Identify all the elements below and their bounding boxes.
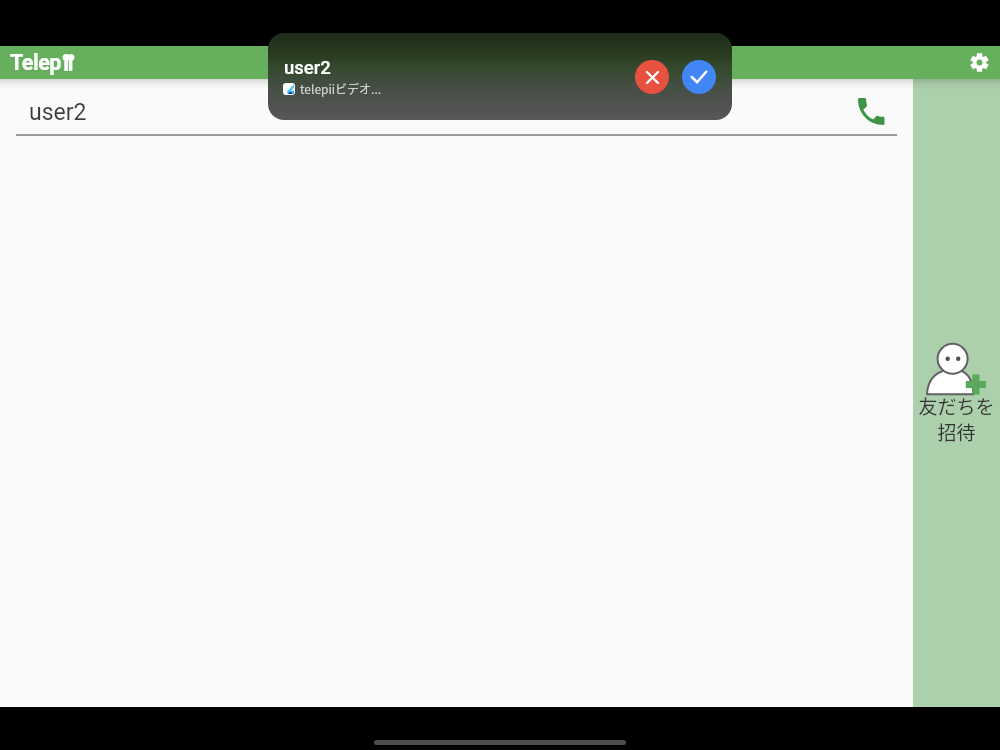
staticText: telepiiビデオ... bbox=[300, 80, 382, 97]
button[interactable]: user2 bbox=[0, 80, 913, 135]
button[interactable]: Call user2 bbox=[850, 91, 894, 135]
button[interactable]: Decline call bbox=[635, 60, 669, 94]
button[interactable]: user2 bbox=[268, 33, 732, 120]
button[interactable]: Accept call bbox=[682, 60, 716, 94]
staticText: user2 bbox=[29, 99, 87, 126]
staticText: Telep bbox=[10, 50, 61, 75]
staticText: 友だちを招待 bbox=[916, 392, 997, 445]
button[interactable]: 友だちを招待 bbox=[913, 79, 1000, 707]
button[interactable]: Settings bbox=[963, 46, 996, 79]
staticText: user2 bbox=[284, 57, 331, 79]
